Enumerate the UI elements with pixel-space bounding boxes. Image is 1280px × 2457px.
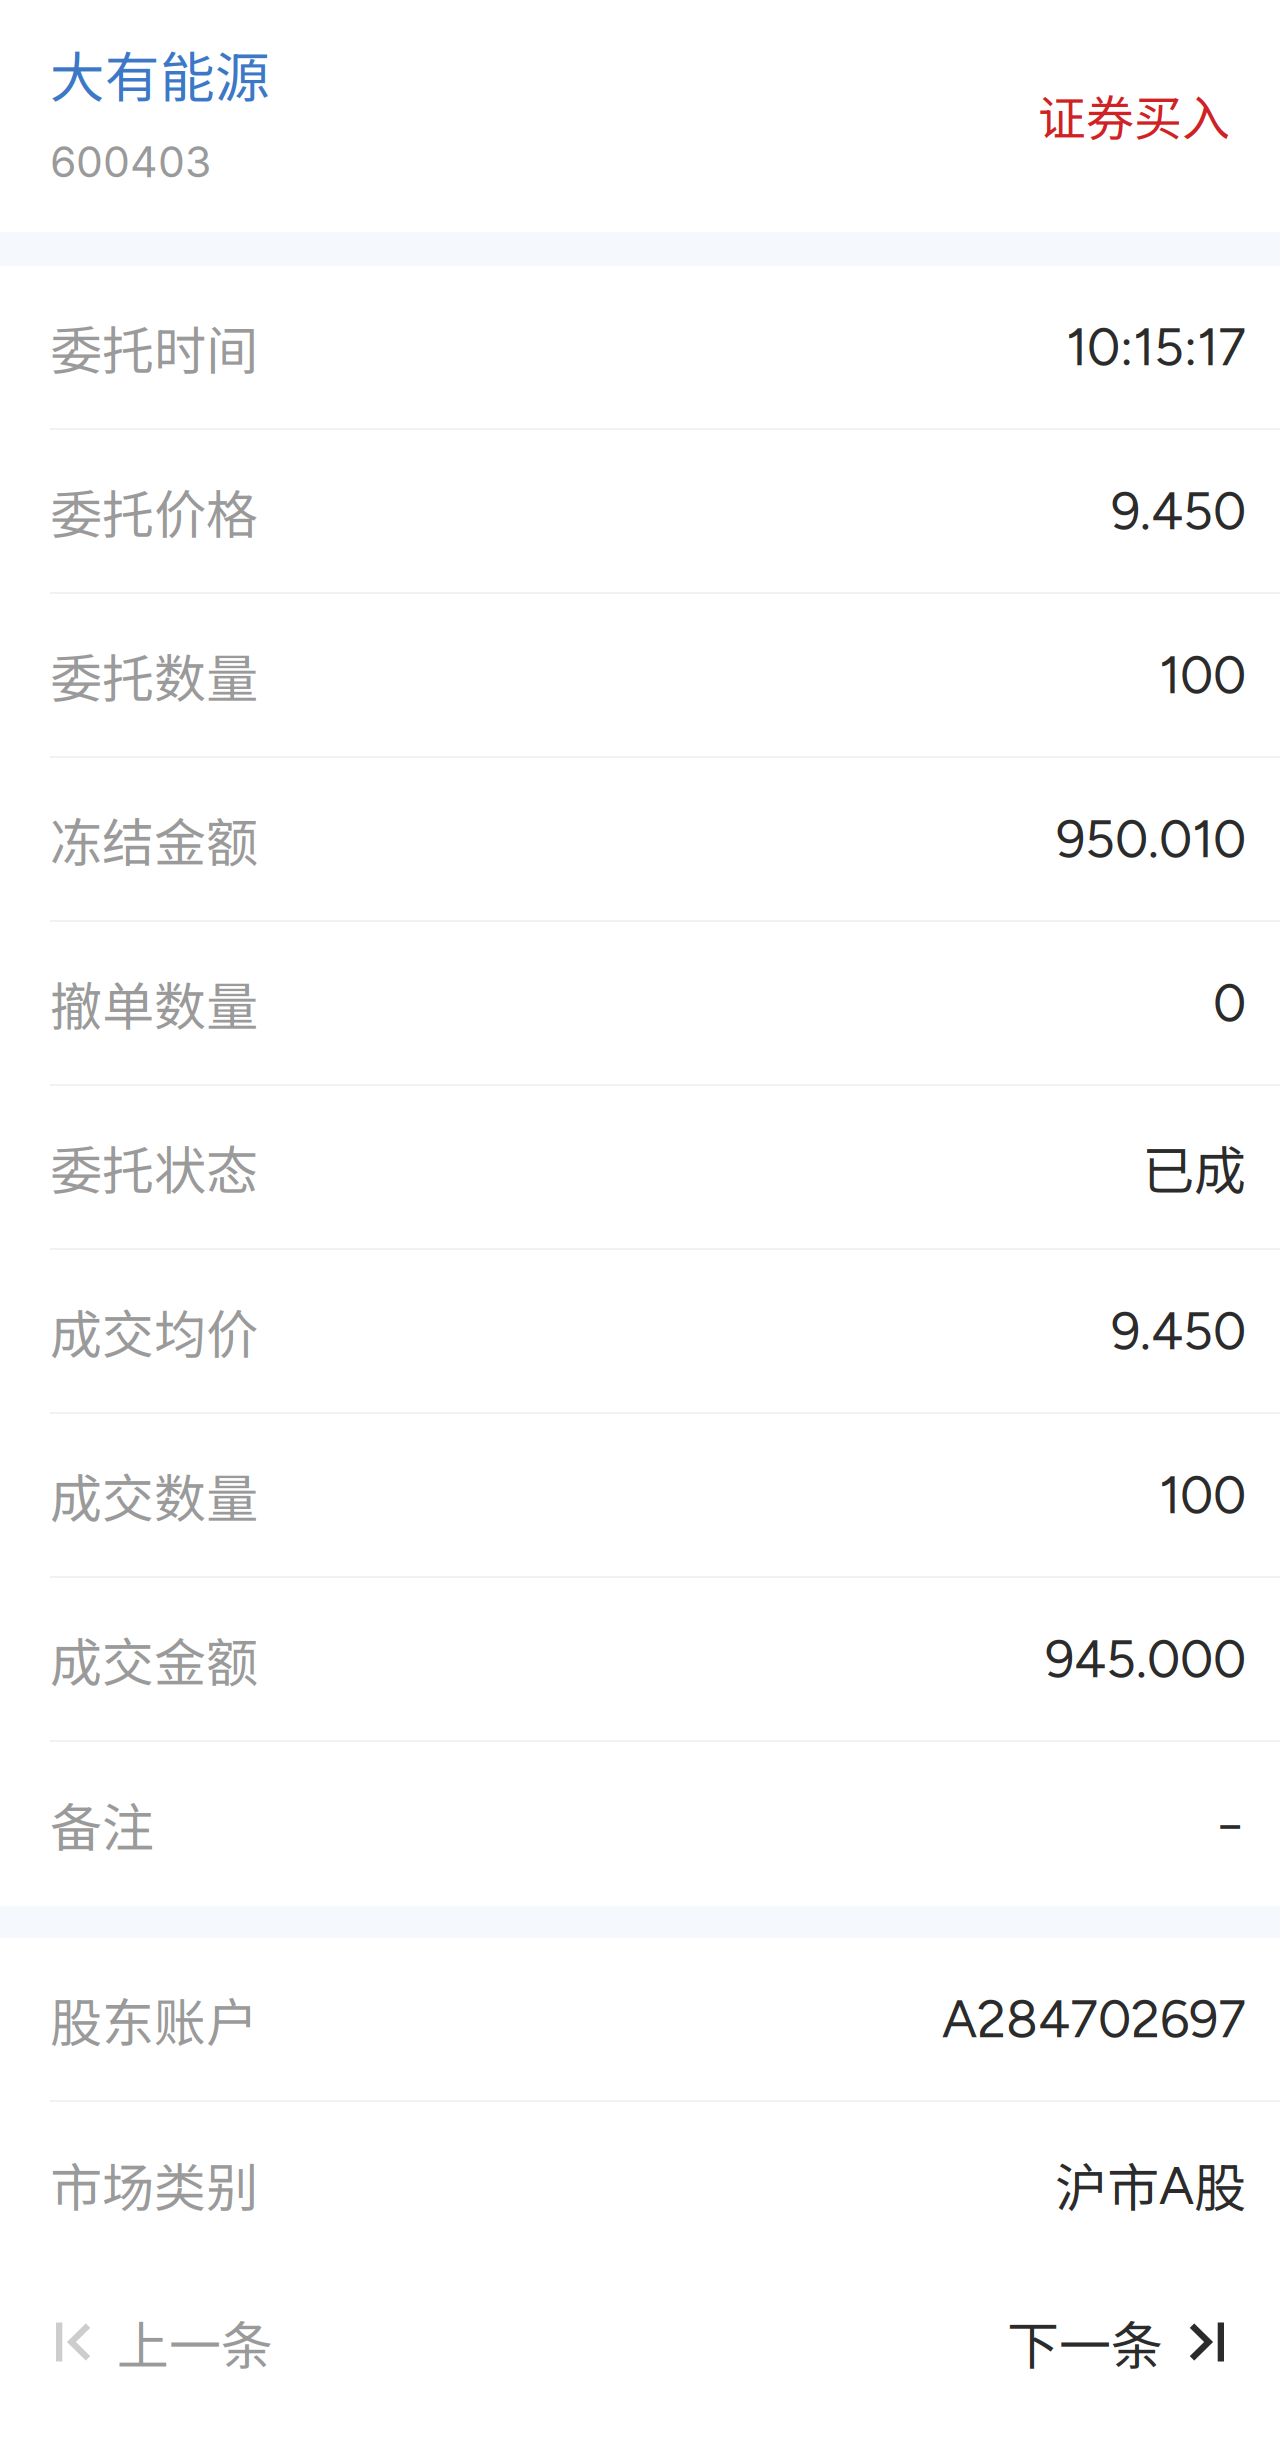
staticText: 大有能源 <box>50 34 270 113</box>
staticText: 9.450 <box>1111 480 1246 542</box>
staticText: 沪市A股 <box>1055 2146 1246 2222</box>
staticText: 委托价格 <box>50 473 258 549</box>
staticText: 已成 <box>1142 1129 1246 1205</box>
button[interactable]: 大有能源 <box>0 0 270 113</box>
staticText: 945.000 <box>1045 1628 1246 1690</box>
staticText: 950.010 <box>1056 808 1246 870</box>
staticText: 证券买入 <box>1038 80 1230 149</box>
staticText: 委托状态 <box>50 1129 258 1205</box>
staticText: 成交数量 <box>50 1457 258 1533</box>
staticText: 委托时间 <box>50 309 258 385</box>
staticText: 股东账户 <box>50 1981 258 2057</box>
staticText: 9.450 <box>1111 1300 1246 1362</box>
staticText: − <box>1214 1793 1246 1855</box>
staticText: 市场类别 <box>50 2146 258 2222</box>
staticText: 委托数量 <box>50 637 258 713</box>
staticText: 备注 <box>50 1786 154 1862</box>
staticText: 100 <box>1159 644 1246 706</box>
staticText: 0 <box>1213 972 1246 1034</box>
staticText: 成交金额 <box>50 1621 258 1697</box>
staticText: 10:15:17 <box>1066 316 1246 378</box>
button[interactable]: 下一条 <box>967 2266 1280 2418</box>
staticText: 下一条 <box>1007 2304 1163 2380</box>
staticText: 冻结金额 <box>50 801 258 877</box>
staticText: 成交均价 <box>50 1293 258 1369</box>
staticText: 100 <box>1159 1464 1246 1526</box>
staticText: 撤单数量 <box>50 965 258 1041</box>
button[interactable]: 上一条 <box>0 2266 313 2418</box>
staticText: 600403 <box>50 136 211 188</box>
staticText: 上一条 <box>117 2304 273 2380</box>
staticText: A284702697 <box>942 1988 1246 2050</box>
